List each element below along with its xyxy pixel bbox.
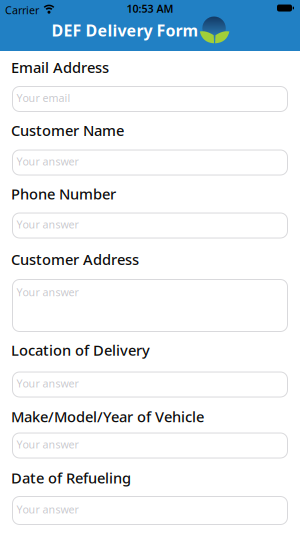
button[interactable]: Customer Name bbox=[12, 150, 287, 175]
staticText: Your answer bbox=[16, 285, 78, 299]
staticText: DEF Delivery Form bbox=[51, 20, 198, 41]
staticText: Phone Number bbox=[11, 184, 116, 204]
staticText: Customer Address bbox=[11, 250, 139, 269]
button[interactable]: Location of Delivery bbox=[12, 372, 287, 397]
staticText: Your answer bbox=[16, 502, 78, 516]
staticText: Your answer bbox=[16, 217, 78, 231]
button[interactable]: Email Address bbox=[12, 86, 287, 111]
staticText: Location of Delivery bbox=[11, 340, 150, 360]
staticText: Email Address bbox=[11, 58, 109, 77]
staticText: Your answer bbox=[16, 376, 78, 390]
button[interactable]: Customer Address bbox=[12, 279, 287, 331]
staticText: 10:53 AM bbox=[126, 1, 173, 16]
button[interactable]: Date of Refueling bbox=[12, 496, 287, 524]
staticText: Date of Refueling bbox=[11, 468, 131, 488]
staticText: Your answer bbox=[16, 437, 78, 451]
button[interactable]: Phone Number bbox=[12, 213, 287, 238]
staticText: Customer Name bbox=[11, 121, 124, 140]
staticText: Your answer bbox=[16, 154, 78, 168]
button[interactable]: DEF Delivery logo bbox=[198, 15, 230, 46]
staticText: Carrier bbox=[5, 3, 39, 17]
staticText: Make/Model/Year of Vehicle bbox=[11, 407, 204, 426]
button[interactable]: Make/Model/Year of Vehicle bbox=[12, 433, 287, 458]
staticText: Your email bbox=[16, 91, 70, 105]
